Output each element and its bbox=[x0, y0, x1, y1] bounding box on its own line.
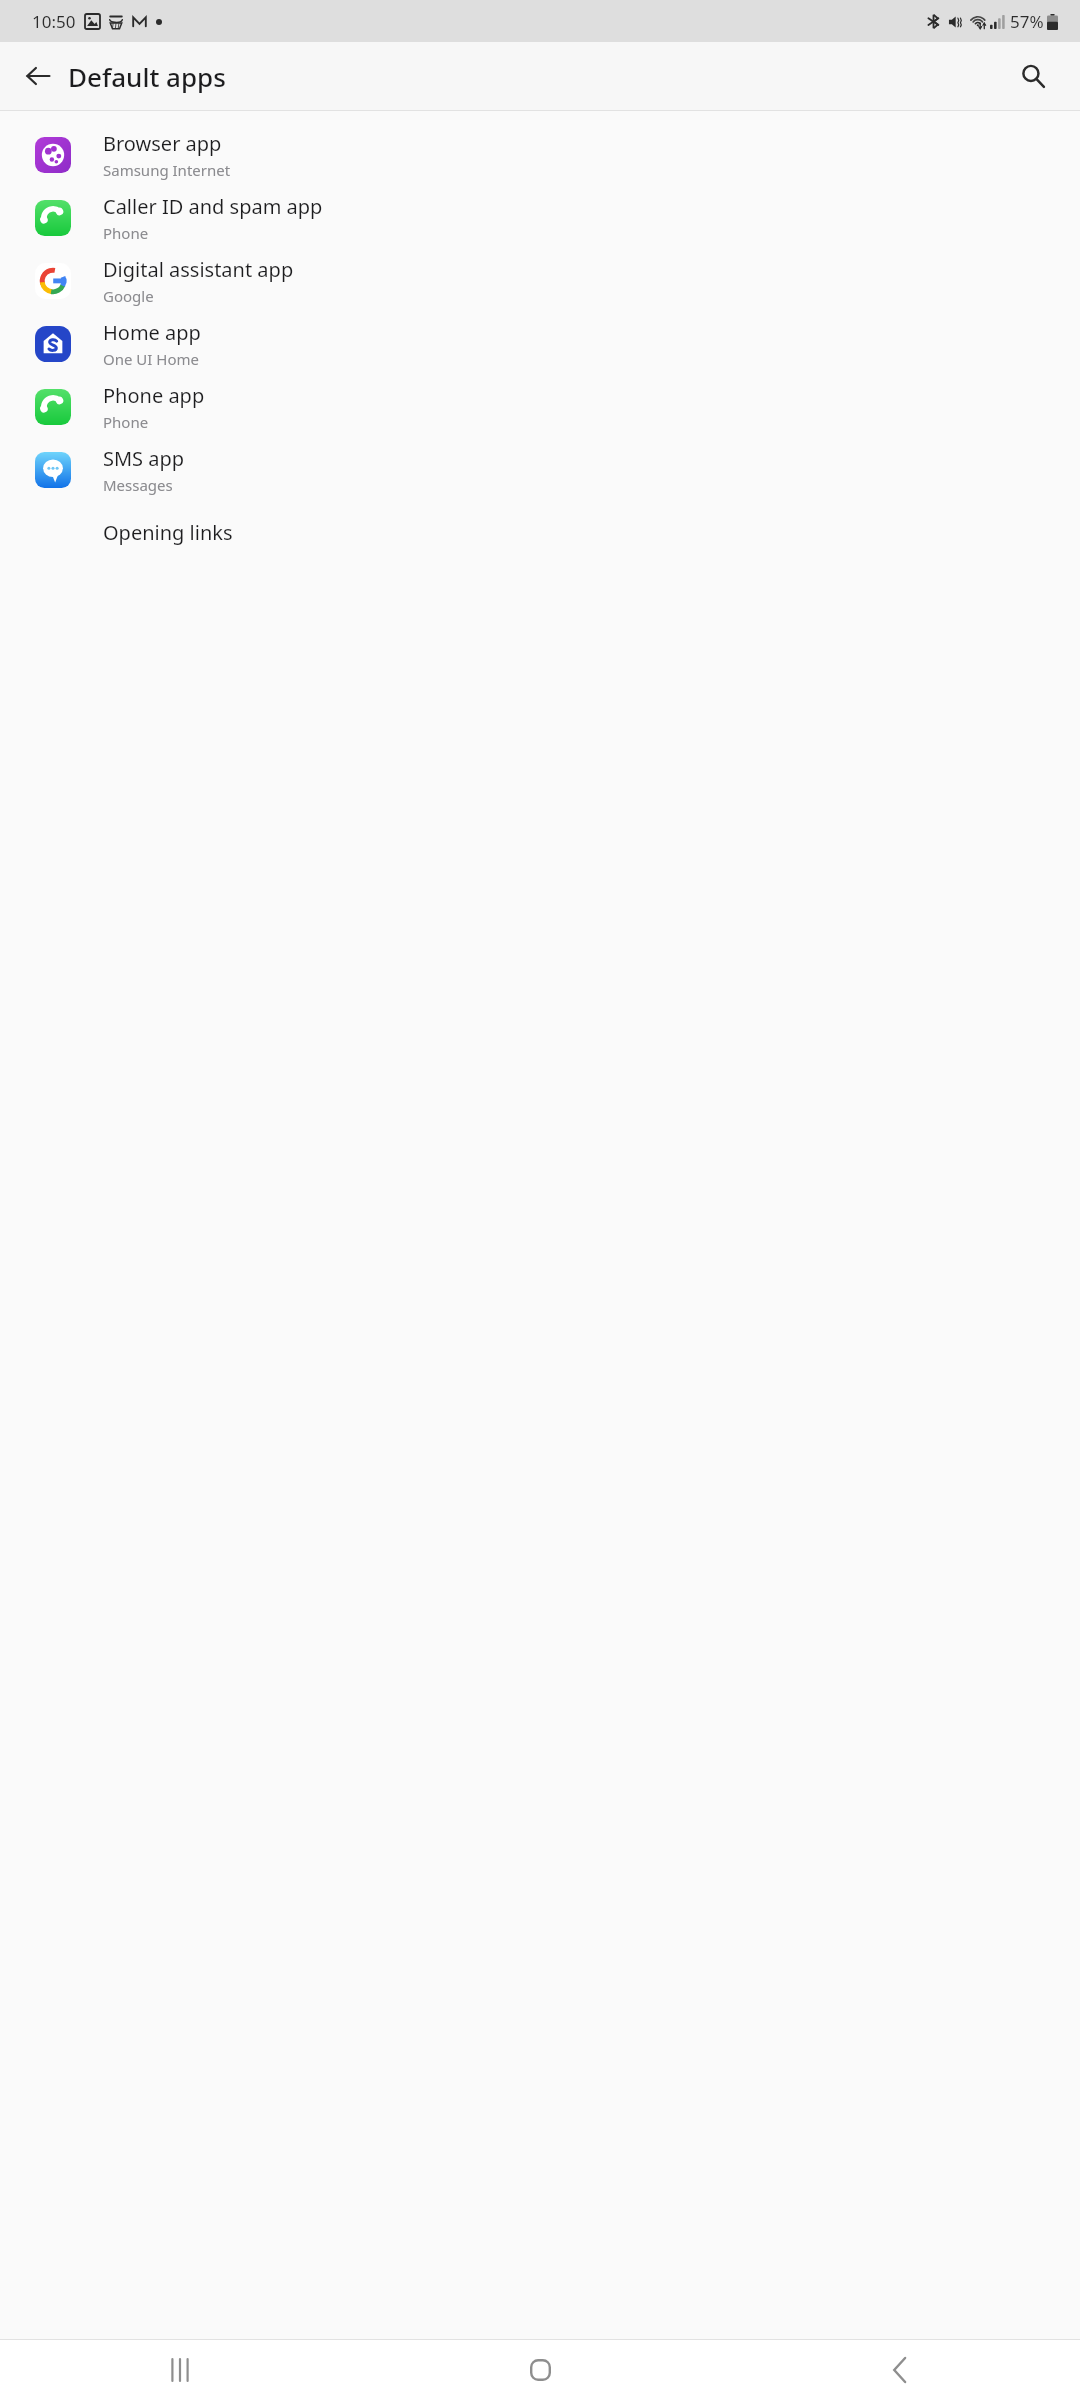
button[interactable]: SMS app bbox=[0, 438, 1080, 501]
staticText: Phone bbox=[103, 223, 149, 243]
button[interactable]: Caller ID and spam app bbox=[0, 186, 1080, 249]
staticText: Home app bbox=[103, 319, 201, 346]
staticText: Digital assistant app bbox=[103, 256, 294, 283]
staticText: Opening links bbox=[103, 519, 233, 546]
staticText: Caller ID and spam app bbox=[103, 193, 323, 220]
staticText: Messages bbox=[103, 475, 173, 495]
button[interactable]: Back bbox=[720, 2340, 1080, 2400]
button[interactable]: Back bbox=[13, 51, 63, 101]
button[interactable]: Digital assistant app bbox=[0, 249, 1080, 312]
staticText: Default apps bbox=[68, 59, 226, 94]
button[interactable]: Search bbox=[1008, 51, 1058, 101]
button[interactable]: Phone app bbox=[0, 375, 1080, 438]
staticText: Browser app bbox=[103, 130, 222, 157]
staticText: 10:50 bbox=[32, 10, 76, 33]
button[interactable]: Home app bbox=[0, 312, 1080, 375]
button[interactable]: Opening links bbox=[0, 501, 1080, 564]
staticText: Phone bbox=[103, 412, 149, 432]
staticText: 57% bbox=[1010, 10, 1044, 33]
staticText: Google bbox=[103, 286, 154, 306]
staticText: One UI Home bbox=[103, 349, 199, 369]
staticText: Phone app bbox=[103, 382, 205, 409]
button[interactable]: Recents bbox=[0, 2340, 360, 2400]
staticText: Samsung Internet bbox=[103, 160, 231, 180]
button[interactable]: Browser app bbox=[0, 123, 1080, 186]
staticText: SMS app bbox=[103, 445, 185, 472]
button[interactable]: Home bbox=[360, 2340, 720, 2400]
